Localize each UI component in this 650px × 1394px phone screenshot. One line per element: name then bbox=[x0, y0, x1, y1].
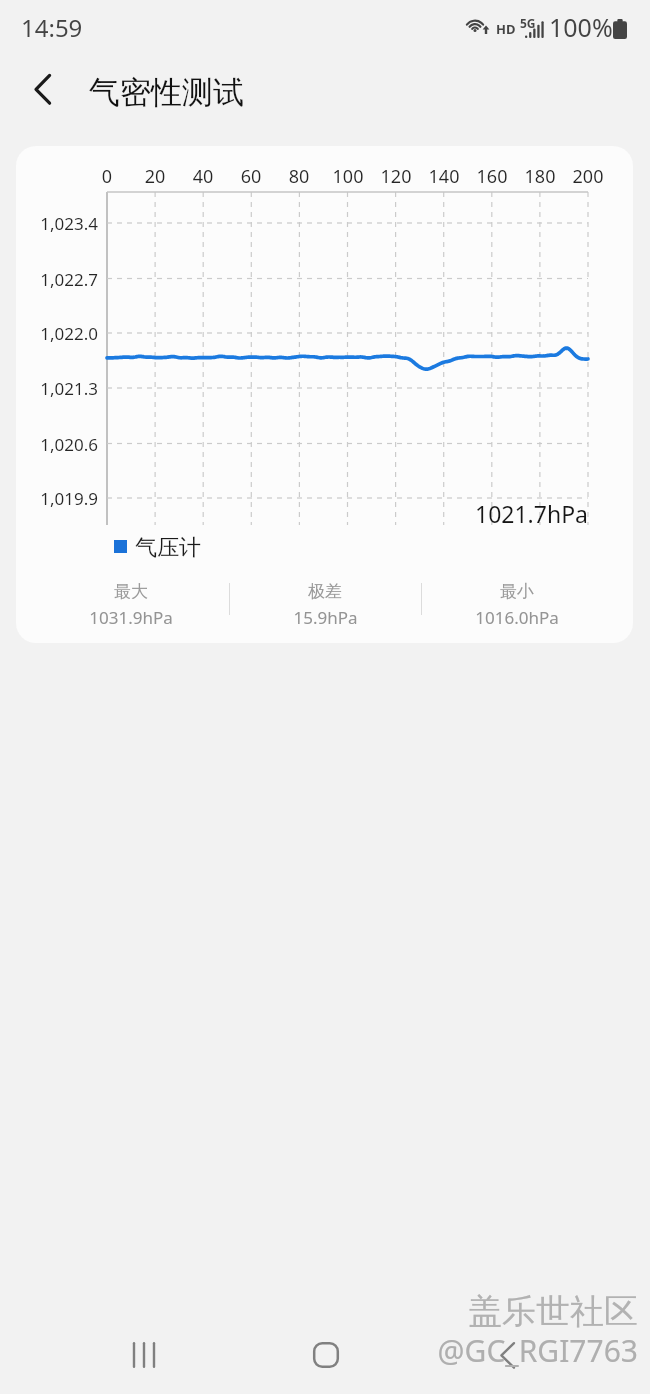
staticText: 160 bbox=[470, 164, 514, 189]
staticText: 80 bbox=[277, 164, 321, 189]
staticText: 1021.7hPa bbox=[475, 498, 588, 529]
staticText: 最小 bbox=[500, 581, 534, 602]
button[interactable]: Recent apps bbox=[120, 1331, 168, 1379]
staticText: 最大 bbox=[114, 581, 148, 602]
staticText: 14:59 bbox=[21, 11, 83, 44]
staticText: 气密性测试 bbox=[89, 73, 244, 112]
staticText: 40 bbox=[181, 164, 225, 189]
button[interactable]: Home bbox=[302, 1331, 350, 1379]
staticText: 100% bbox=[549, 10, 613, 44]
staticText: 1,022.0 bbox=[28, 322, 98, 345]
staticText: 1016.0hPa bbox=[475, 606, 559, 629]
staticText: 5G bbox=[520, 15, 536, 31]
staticText: 1,022.7 bbox=[28, 268, 98, 291]
staticText: 1,019.9 bbox=[28, 487, 98, 510]
button[interactable]: Back bbox=[8, 61, 64, 117]
staticText: 200 bbox=[566, 164, 610, 189]
staticText: 100 bbox=[326, 164, 370, 189]
staticText: 20 bbox=[133, 164, 177, 189]
staticText: 极差 bbox=[308, 581, 342, 602]
staticText: 120 bbox=[374, 164, 418, 189]
staticText: 15.9hPa bbox=[293, 606, 358, 629]
staticText: 140 bbox=[422, 164, 466, 189]
staticText: 气压计 bbox=[135, 534, 201, 562]
staticText: 盖乐世社区 bbox=[330, 1290, 638, 1333]
staticText: 1,023.4 bbox=[28, 212, 98, 235]
staticText: 180 bbox=[518, 164, 562, 189]
staticText: HD bbox=[496, 20, 516, 38]
staticText: 60 bbox=[229, 164, 273, 189]
staticText: 1031.9hPa bbox=[89, 606, 173, 629]
button[interactable]: Back bbox=[483, 1331, 531, 1379]
staticText: 1,020.6 bbox=[28, 433, 98, 456]
staticText: 1,021.3 bbox=[28, 377, 98, 400]
staticText: 0 bbox=[85, 164, 129, 189]
staticText: @GC_RGI7763 bbox=[330, 1330, 638, 1371]
